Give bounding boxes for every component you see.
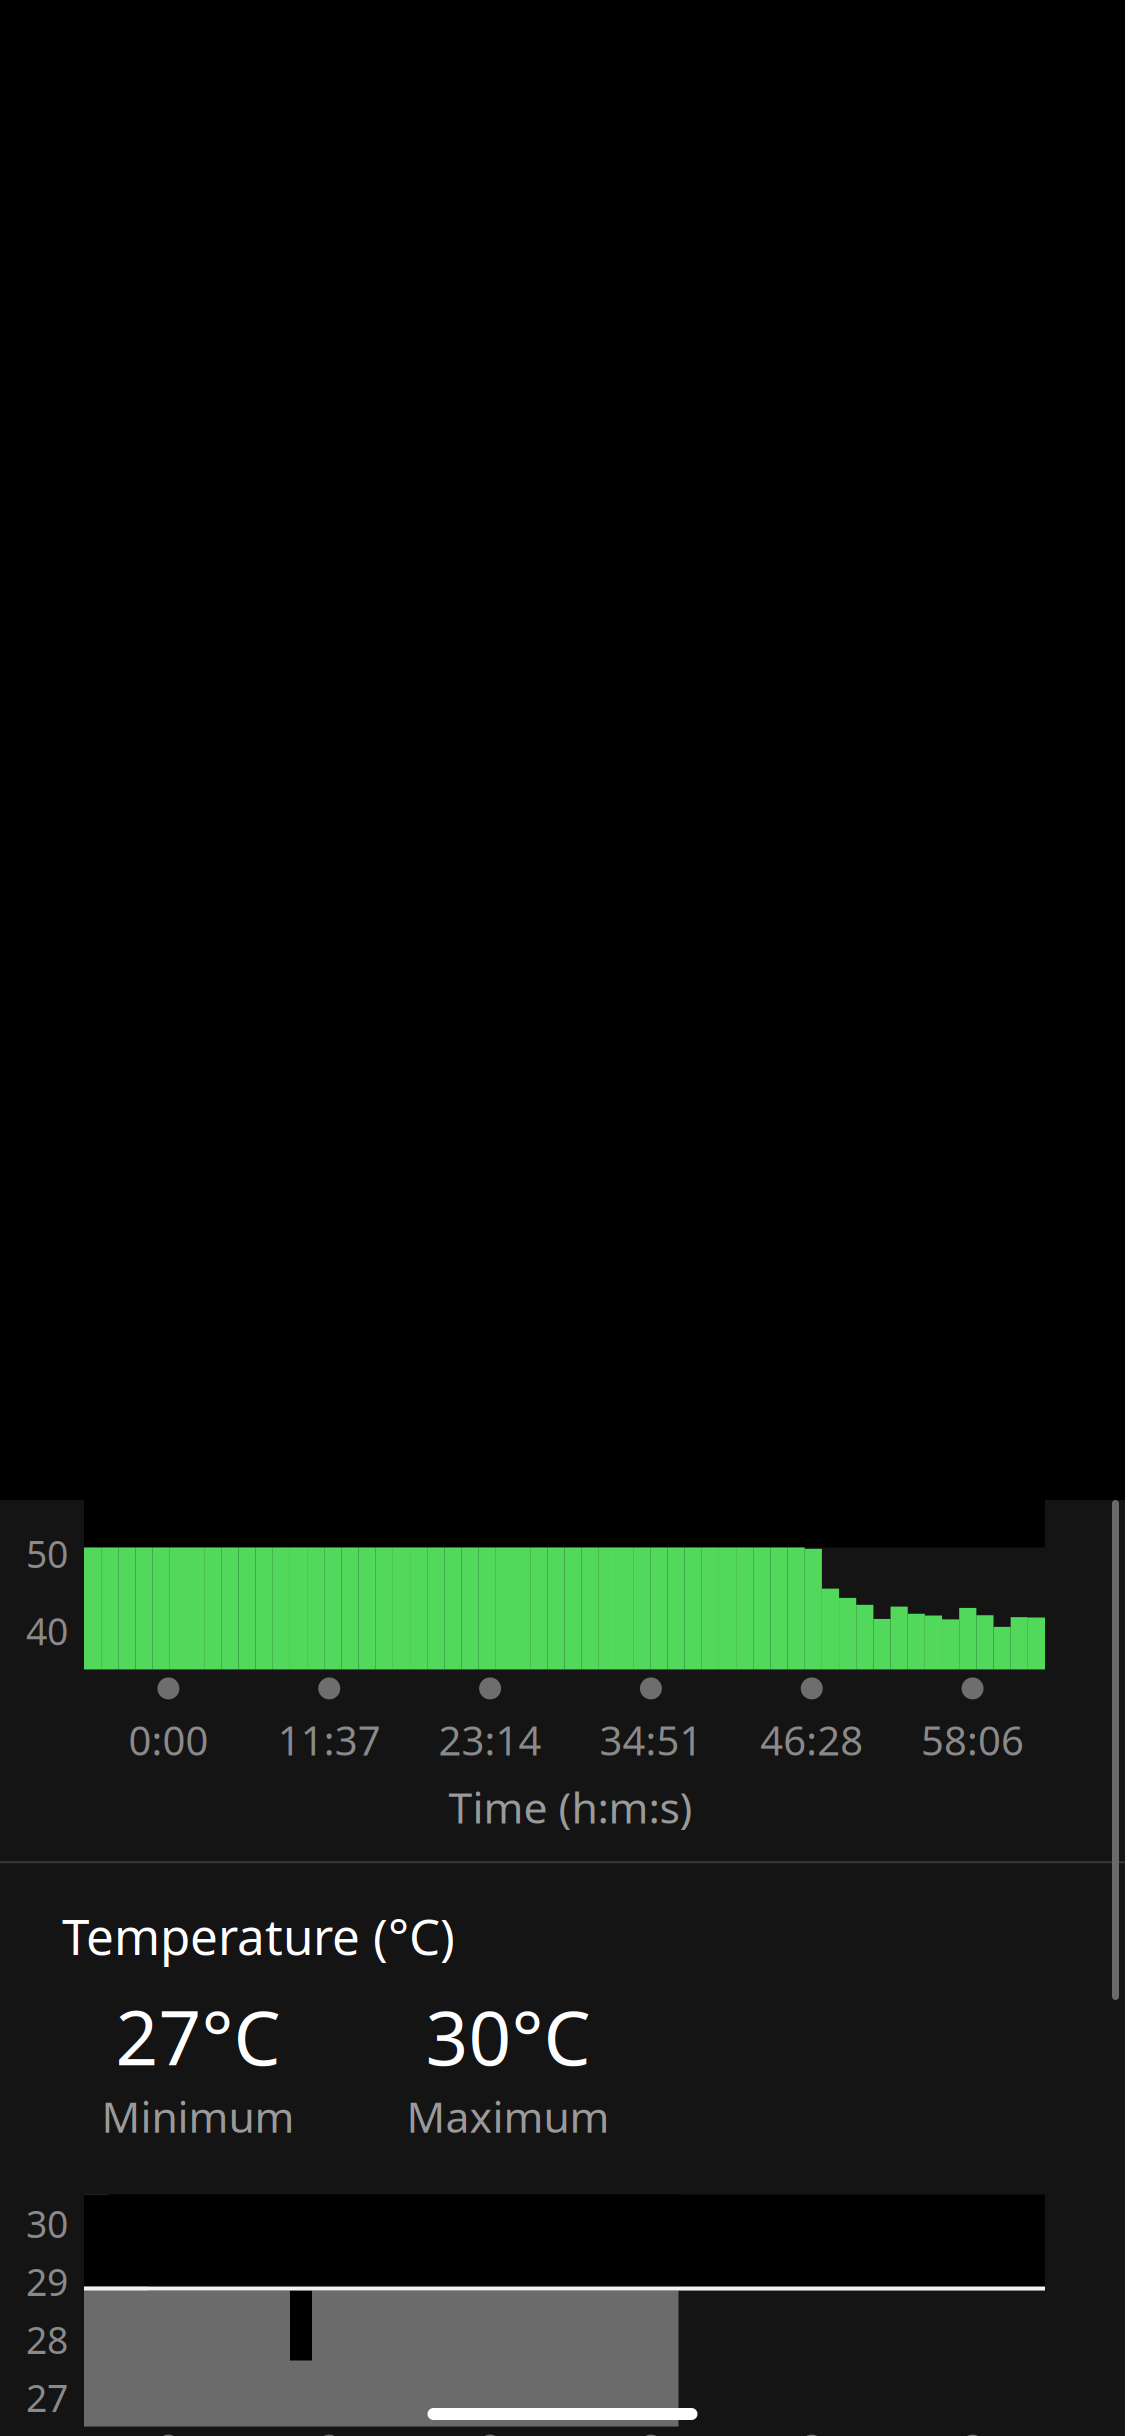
staticText: 40	[26, 1606, 68, 1656]
staticText: 23:14	[439, 1713, 542, 1766]
staticText: 46:28	[760, 1713, 863, 1766]
staticText: 30	[26, 2199, 68, 2248]
staticText: 11:37	[278, 1713, 381, 1766]
staticText: 27°C	[115, 1987, 280, 2086]
staticText: Maximum	[406, 2088, 609, 2145]
staticText: 34:51	[599, 1713, 702, 1766]
staticText: 50	[26, 1529, 68, 1578]
staticText: 29	[26, 2257, 68, 2306]
staticText: Temperature (°C)	[62, 1903, 455, 1969]
staticText: 28	[26, 2315, 68, 2364]
staticText: 30°C	[425, 1987, 590, 2086]
staticText: 58:06	[921, 1713, 1024, 1766]
staticText: 27	[26, 2373, 68, 2422]
staticText: Time (h:m:s)	[448, 1778, 692, 1835]
staticText: Minimum	[101, 2088, 294, 2145]
staticText: 0:00	[128, 1713, 208, 1766]
